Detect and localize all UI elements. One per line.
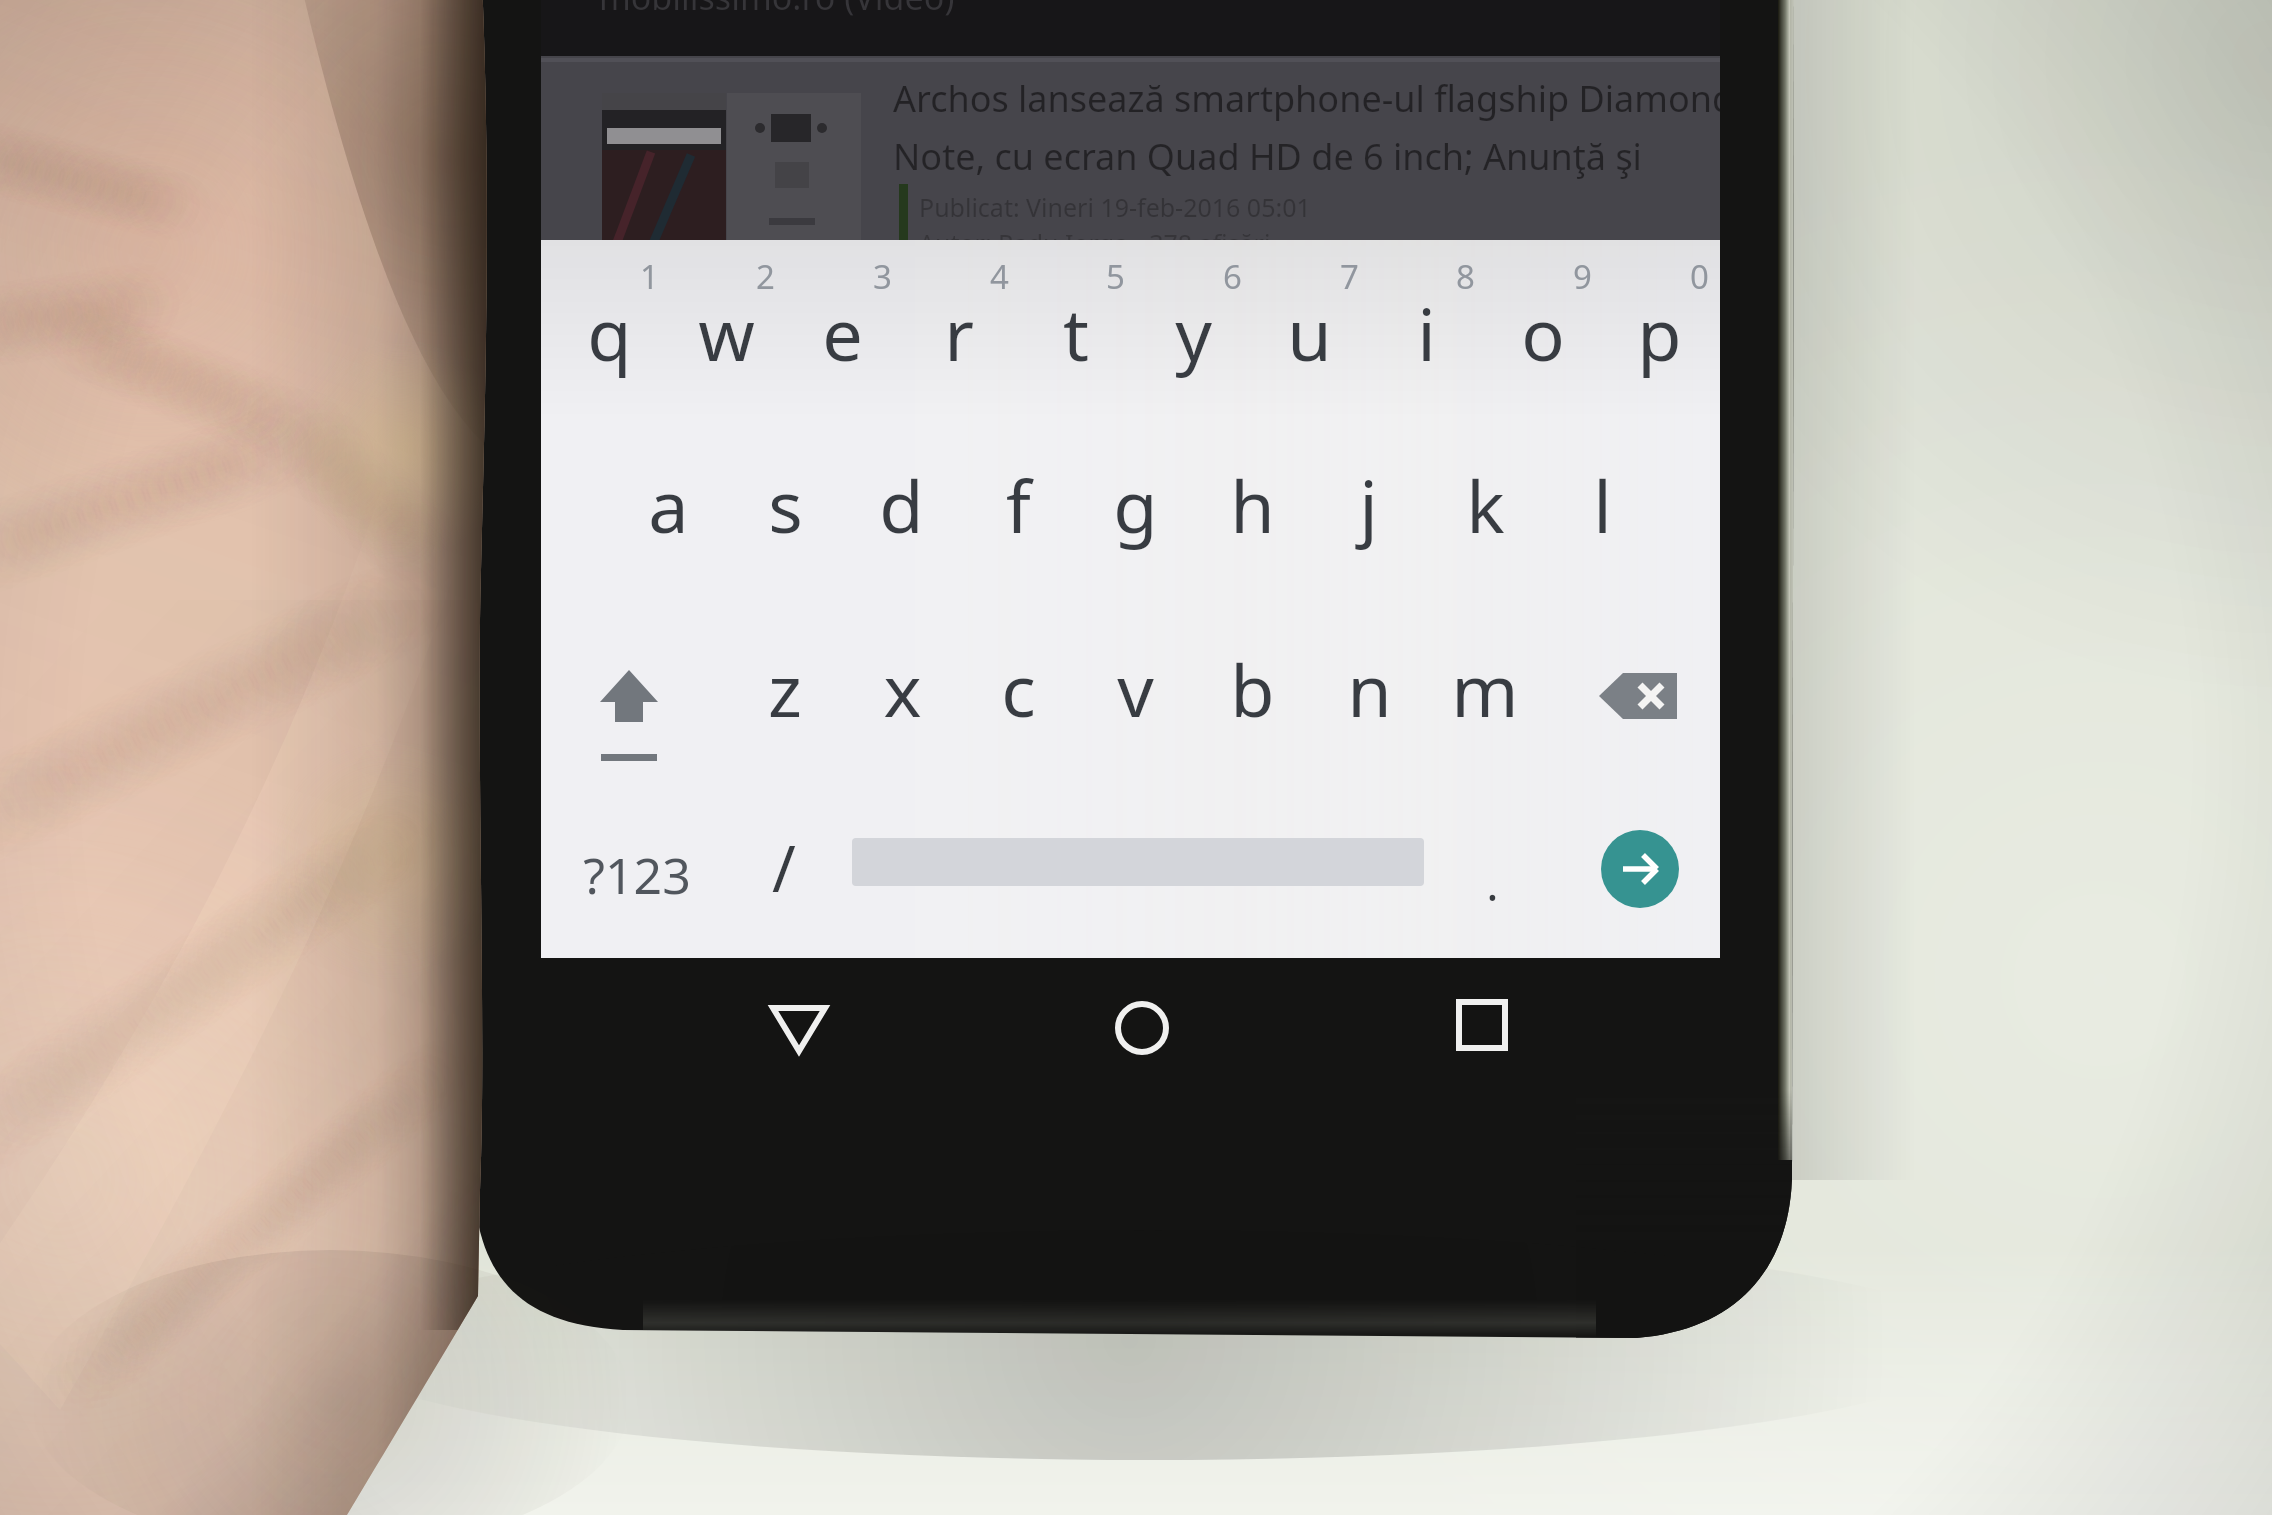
button[interactable]: 3 bbox=[833, 254, 932, 307]
staticText: u bbox=[1287, 284, 1332, 382]
staticText: j bbox=[1359, 456, 1378, 554]
button[interactable]: i bbox=[1318, 284, 1534, 399]
staticText: mobilissimo.ro (Video) bbox=[599, 0, 955, 20]
staticText: m bbox=[1451, 640, 1519, 738]
staticText: Note, cu ecran Quad HD de 6 inch; Anunţă… bbox=[893, 132, 1720, 181]
button[interactable]: f bbox=[910, 456, 1126, 571]
button[interactable]: o bbox=[1435, 284, 1651, 399]
staticText: p bbox=[1637, 284, 1682, 382]
staticText: h bbox=[1230, 456, 1275, 554]
staticText: 1 bbox=[640, 254, 659, 299]
staticText: / bbox=[772, 824, 796, 911]
button[interactable]: s bbox=[677, 456, 893, 571]
button[interactable]: z bbox=[677, 640, 893, 755]
button[interactable]: x bbox=[794, 640, 1010, 755]
staticText: b bbox=[1230, 640, 1275, 738]
staticText: o bbox=[1521, 284, 1565, 382]
button[interactable]: / bbox=[688, 824, 880, 926]
button[interactable]: j bbox=[1260, 456, 1476, 571]
staticText: Autor: Radu Iorga - 378 afişări bbox=[919, 226, 1271, 240]
staticText: c bbox=[1001, 640, 1036, 738]
staticText: 0 bbox=[1690, 254, 1709, 299]
staticText: t bbox=[1063, 284, 1089, 382]
button[interactable]: v bbox=[1027, 640, 1243, 755]
button[interactable]: Archos lansează smartphone-ul flagship D… bbox=[541, 0, 1720, 240]
staticText: v bbox=[1117, 640, 1154, 738]
button[interactable]: r bbox=[851, 284, 1067, 399]
button[interactable]: c bbox=[910, 640, 1126, 755]
button[interactable]: Home bbox=[1012, 940, 1272, 1115]
button[interactable]: u bbox=[1201, 284, 1417, 399]
button[interactable]: 5 bbox=[1066, 254, 1165, 307]
button[interactable]: ?123 bbox=[562, 841, 712, 921]
staticText: 3 bbox=[873, 254, 892, 299]
button[interactable]: k bbox=[1377, 456, 1593, 571]
button[interactable]: y bbox=[1085, 284, 1301, 399]
button[interactable]: 9 bbox=[1533, 254, 1632, 307]
button[interactable]: m bbox=[1377, 640, 1593, 755]
button[interactable]: a bbox=[560, 456, 776, 571]
staticText: z bbox=[768, 640, 802, 738]
button[interactable]: g bbox=[1027, 456, 1243, 571]
button[interactable]: Shift bbox=[571, 648, 691, 788]
button[interactable]: 6 bbox=[1183, 254, 1282, 307]
staticText: w bbox=[698, 284, 755, 382]
button[interactable]: 1 bbox=[600, 254, 699, 307]
staticText: l bbox=[1593, 456, 1612, 554]
staticText: . bbox=[1486, 852, 1499, 915]
staticText: e bbox=[822, 284, 863, 382]
button[interactable]: Enter bbox=[1601, 830, 1679, 908]
staticText: i bbox=[1417, 284, 1436, 382]
staticText: f bbox=[1006, 456, 1031, 554]
staticText: 8 bbox=[1456, 254, 1475, 299]
button[interactable]: l bbox=[1494, 456, 1710, 571]
staticText: r bbox=[944, 284, 974, 382]
button[interactable]: p bbox=[1551, 284, 1767, 399]
button[interactable]: n bbox=[1261, 640, 1477, 755]
button[interactable]: b bbox=[1144, 640, 1360, 755]
button[interactable]: e bbox=[734, 284, 950, 399]
button[interactable]: . bbox=[1423, 852, 1561, 926]
button[interactable]: 8 bbox=[1416, 254, 1515, 307]
staticText: 6 bbox=[1223, 254, 1242, 299]
staticText: Publicat: Vineri 19-feb-2016 05:01 bbox=[919, 190, 1311, 224]
staticText: s bbox=[768, 456, 803, 554]
button[interactable]: Backspace bbox=[1581, 650, 1709, 750]
button[interactable]: 0 bbox=[1650, 254, 1749, 307]
staticText: 9 bbox=[1573, 254, 1592, 299]
button[interactable]: q bbox=[501, 284, 717, 399]
button[interactable]: 4 bbox=[950, 254, 1049, 307]
button[interactable]: Back bbox=[669, 940, 929, 1115]
button[interactable]: t bbox=[968, 284, 1184, 399]
staticText: 2 bbox=[756, 254, 775, 299]
staticText: y bbox=[1175, 284, 1212, 382]
staticText: 7 bbox=[1340, 254, 1359, 299]
staticText: Archos lansează smartphone-ul flagship D… bbox=[893, 74, 1720, 123]
staticText: n bbox=[1347, 640, 1392, 738]
button[interactable]: d bbox=[793, 456, 1009, 571]
staticText: a bbox=[648, 456, 689, 554]
button[interactable]: h bbox=[1144, 456, 1360, 571]
staticText: q bbox=[587, 284, 632, 382]
button[interactable]: Recent apps bbox=[1352, 940, 1612, 1115]
staticText: k bbox=[1466, 456, 1505, 554]
staticText: 5 bbox=[1106, 254, 1125, 299]
staticText: d bbox=[879, 456, 924, 554]
staticText: x bbox=[883, 640, 922, 738]
button[interactable]: 2 bbox=[716, 254, 815, 307]
button[interactable]: 7 bbox=[1300, 254, 1399, 307]
staticText: 4 bbox=[990, 254, 1009, 299]
staticText: g bbox=[1113, 456, 1158, 554]
staticText: ?123 bbox=[583, 841, 691, 909]
button[interactable]: w bbox=[618, 284, 834, 399]
